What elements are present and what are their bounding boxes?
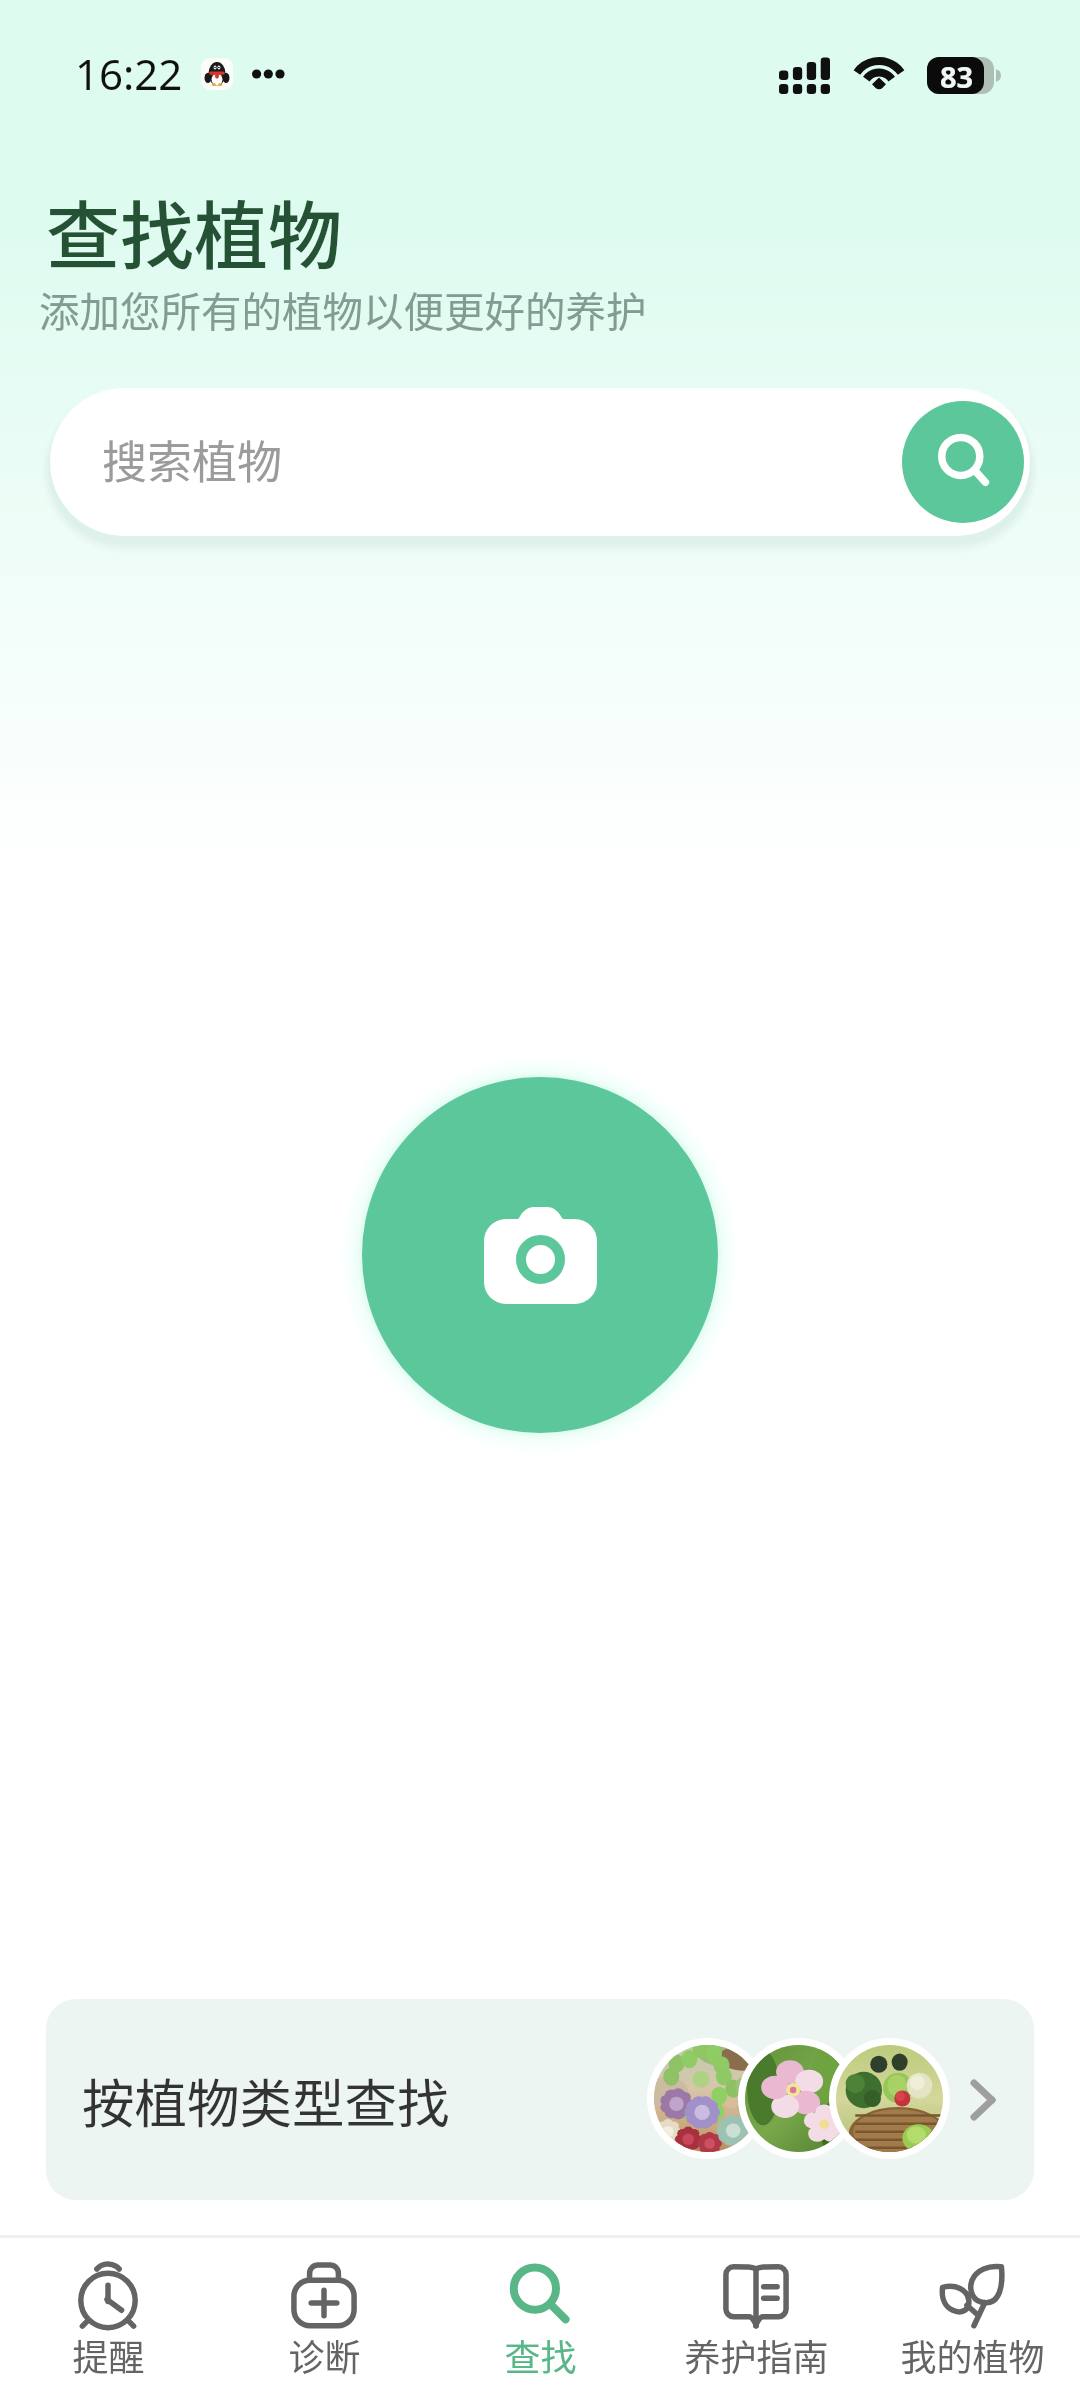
- staticText: 查找: [504, 2329, 577, 2381]
- button[interactable]: 按植物类型查找: [46, 1999, 1034, 2200]
- staticText: 16:22: [75, 45, 183, 102]
- staticText: 提醒: [72, 2329, 145, 2381]
- staticText: 按植物类型查找: [82, 2062, 450, 2138]
- button[interactable]: 养护指南: [648, 2238, 864, 2381]
- staticText: 诊断: [288, 2329, 361, 2381]
- button[interactable]: 搜索: [902, 401, 1024, 523]
- button[interactable]: 我的植物: [864, 2238, 1080, 2381]
- staticText: 搜索植物: [102, 427, 283, 492]
- button[interactable]: 提醒: [0, 2238, 216, 2381]
- staticText: 添加您所有的植物以便更好的养护: [39, 280, 647, 339]
- button[interactable]: 拍照识别植物: [362, 1077, 718, 1433]
- staticText: 养护指南: [684, 2329, 829, 2381]
- staticText: 查找植物: [46, 177, 342, 284]
- button[interactable]: 搜索植物: [50, 388, 1030, 536]
- button[interactable]: 诊断: [216, 2238, 432, 2381]
- button[interactable]: 查找: [432, 2238, 648, 2381]
- staticText: 我的植物: [900, 2329, 1045, 2381]
- staticText: 83: [940, 57, 974, 94]
